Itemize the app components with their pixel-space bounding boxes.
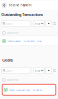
staticText: Filter [34, 69, 40, 72]
staticText: Receive Payment [8, 3, 31, 7]
staticText: Filter [34, 22, 40, 25]
staticText: Credits [2, 58, 13, 63]
button[interactable]: Filter [33, 67, 44, 74]
staticText: Credit Note #CN-004 · 04 Feb 24 [9, 88, 42, 91]
button[interactable]: Sort [46, 67, 52, 74]
staticText: Search [6, 22, 12, 25]
button[interactable]: View options [53, 21, 56, 26]
staticText: Invoice #0042 · 12 Jan 2024 · Due [7, 39, 41, 42]
button[interactable]: View options [53, 68, 56, 73]
button[interactable]: Sort [46, 20, 52, 27]
button[interactable]: Back [1, 2, 7, 8]
staticText: Search [6, 69, 12, 72]
staticText: DESCRIPTION [7, 32, 18, 34]
button[interactable]: Filter [33, 20, 44, 27]
button[interactable]: Credit Note #CN-004 · 04 Feb 24 [2, 84, 56, 95]
staticText: Outstanding Transactions [1, 12, 43, 17]
staticText: DESCRIPTION [7, 79, 18, 81]
